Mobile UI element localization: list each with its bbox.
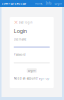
button[interactable]: Info xyxy=(44,2,53,5)
staticText: COMPLETE ACCESS xyxy=(1,2,25,5)
staticText: Need an account? xyxy=(14,77,38,80)
staticText: Login xyxy=(54,2,62,5)
button[interactable]: Login xyxy=(27,68,37,73)
staticText: Login xyxy=(28,69,36,72)
staticText: Bad login xyxy=(19,21,33,24)
button[interactable]: Login xyxy=(53,2,62,5)
staticText: Sign Up xyxy=(38,77,49,80)
staticText: ✕ xyxy=(14,19,18,26)
button[interactable]: Home xyxy=(33,2,44,5)
staticText: Home xyxy=(35,2,43,5)
staticText: Info xyxy=(46,2,52,5)
staticText: Username xyxy=(14,38,27,41)
button[interactable]: Sign Up xyxy=(38,77,49,80)
staticText: Password xyxy=(14,53,26,56)
staticText: Login xyxy=(14,27,27,35)
button[interactable]: COMPLETE ACCESS xyxy=(1,2,25,5)
